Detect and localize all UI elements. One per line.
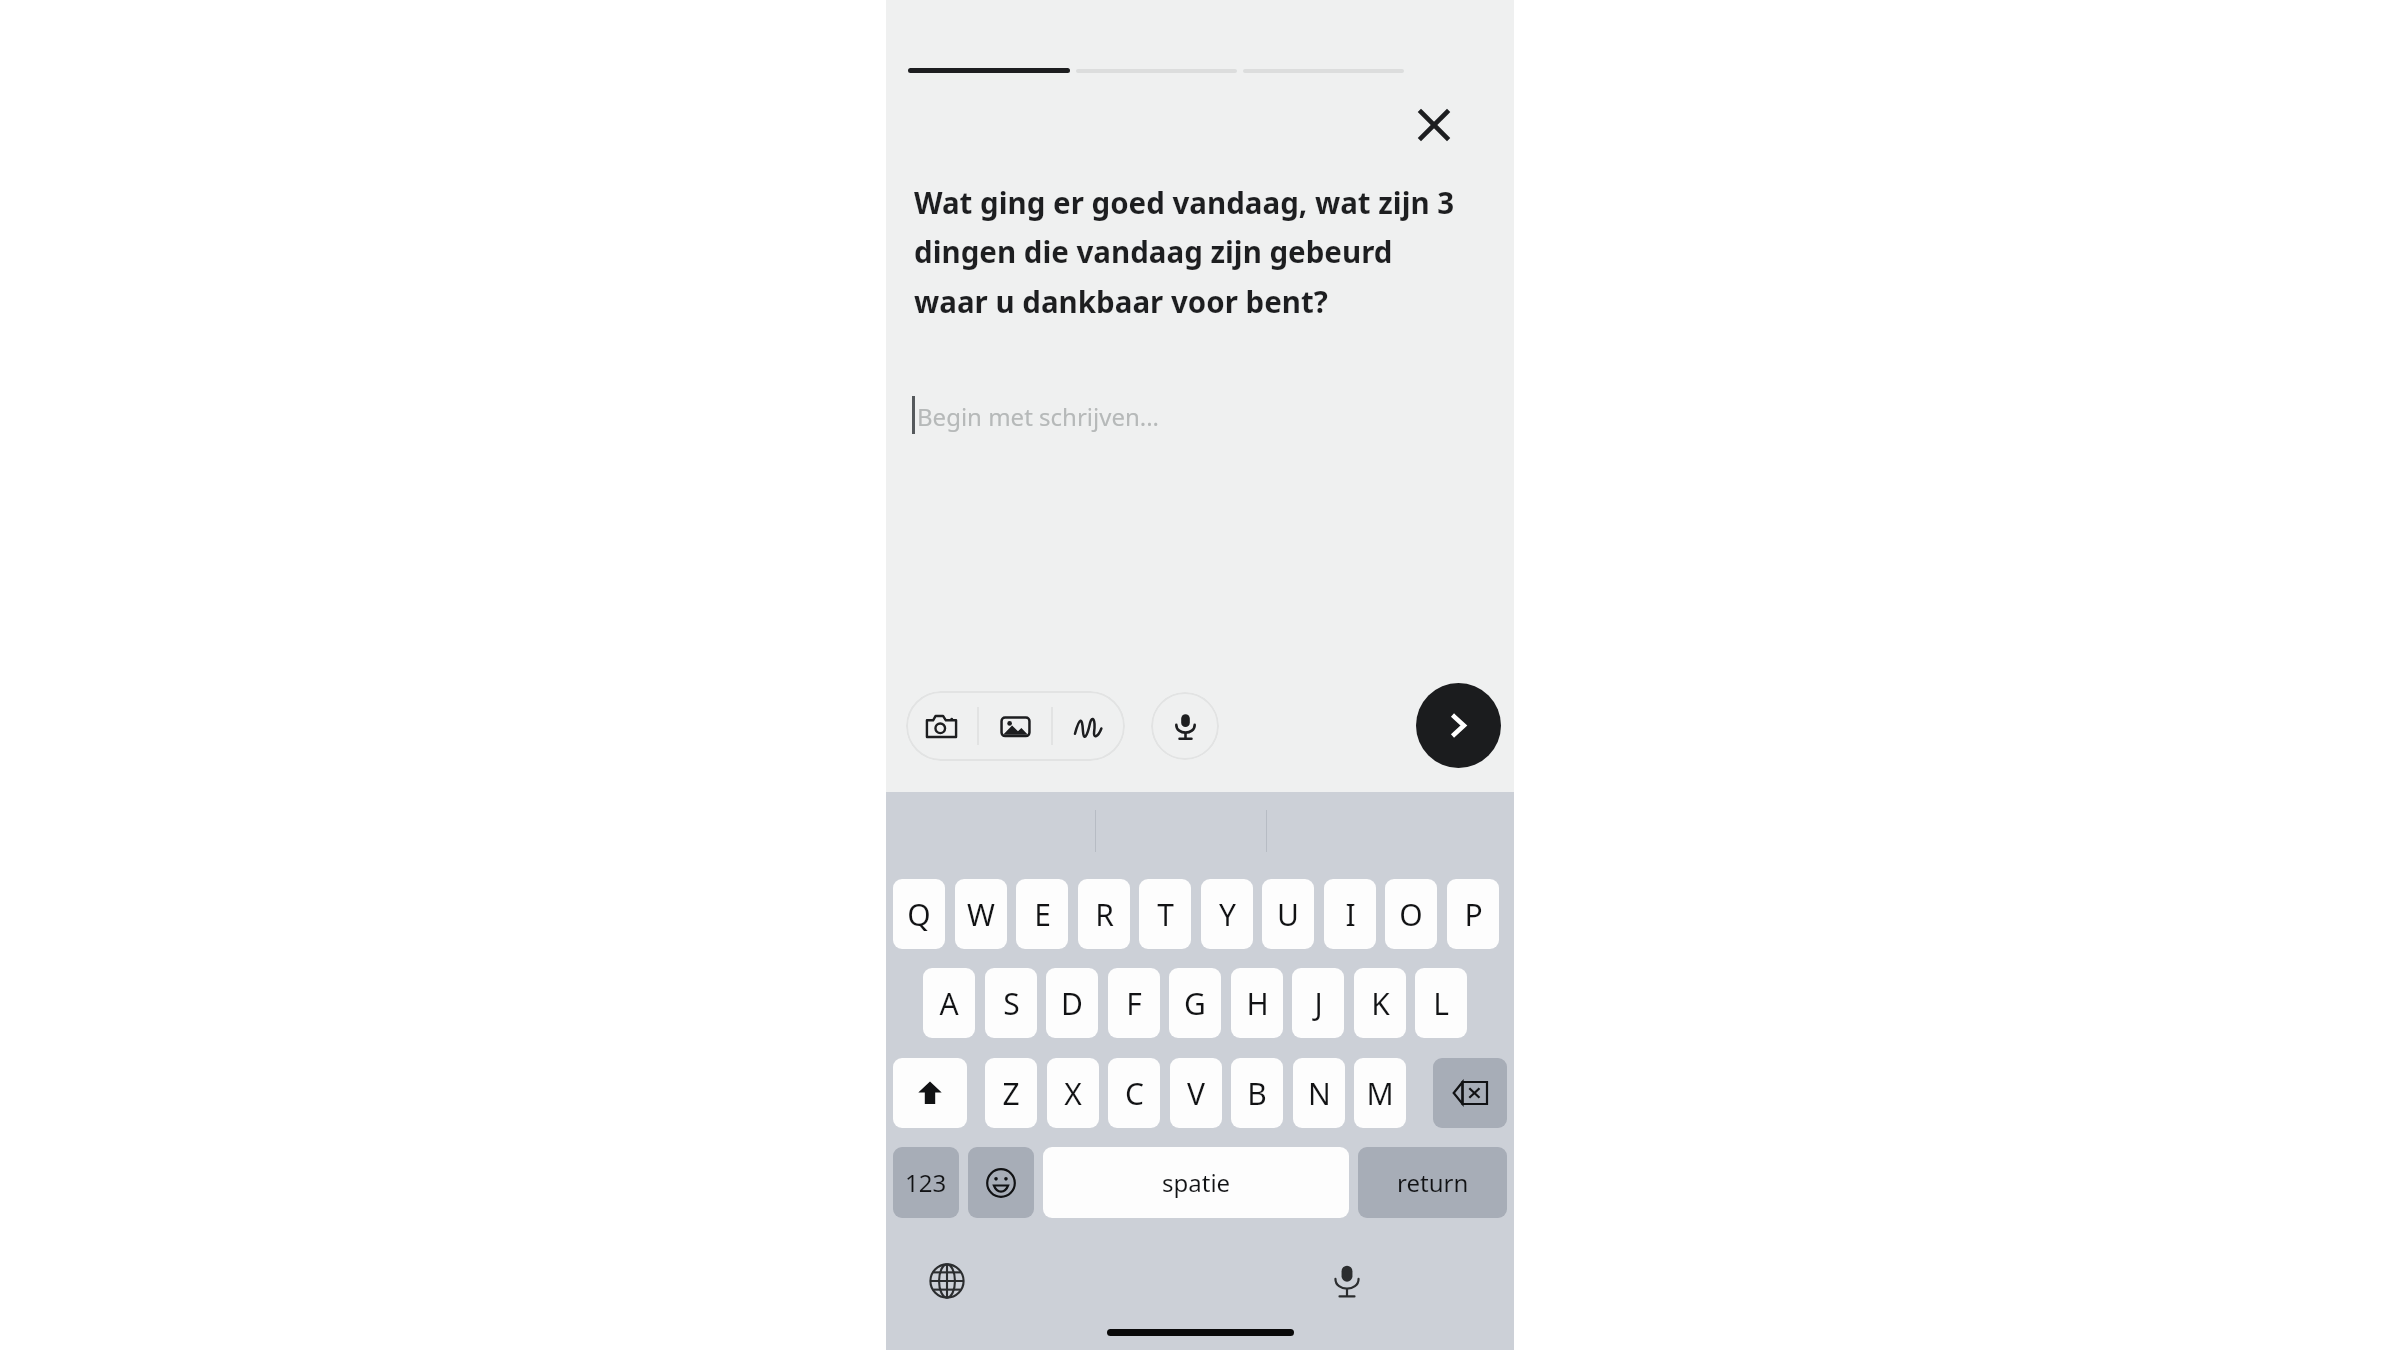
staticText: W <box>967 894 995 935</box>
staticText: J <box>1314 983 1323 1024</box>
staticText: H <box>1246 983 1269 1024</box>
staticText: P <box>1464 894 1483 935</box>
button[interactable]: F <box>1108 968 1160 1038</box>
button[interactable]: P <box>1447 879 1499 949</box>
button[interactable]: U <box>1262 879 1314 949</box>
button[interactable]: E <box>1016 879 1068 949</box>
staticText: return <box>1397 1166 1469 1199</box>
staticText: Z <box>1002 1073 1020 1114</box>
staticText: X <box>1064 1073 1082 1114</box>
button[interactable]: R <box>1078 879 1130 949</box>
staticText: M <box>1366 1073 1394 1114</box>
staticText: K <box>1371 983 1390 1024</box>
staticText: spatie <box>1162 1166 1231 1199</box>
button[interactable]: Dictation <box>1318 1252 1376 1310</box>
button[interactable]: S <box>985 968 1037 1038</box>
button[interactable]: C <box>1108 1058 1160 1128</box>
button[interactable]: Take photo <box>906 691 977 761</box>
staticText: U <box>1277 894 1299 935</box>
staticText: V <box>1187 1073 1205 1114</box>
staticText: B <box>1247 1073 1267 1114</box>
button[interactable]: Close <box>1402 93 1466 157</box>
button[interactable]: M <box>1354 1058 1406 1128</box>
button[interactable]: spatie <box>1043 1147 1349 1218</box>
staticText: Q <box>907 894 931 935</box>
staticText: Begin met schrijven... <box>917 400 1160 433</box>
button[interactable]: D <box>1046 968 1098 1038</box>
button[interactable]: Draw <box>1053 691 1125 761</box>
button[interactable]: 123 <box>893 1147 959 1218</box>
staticText: I <box>1345 894 1356 935</box>
button[interactable]: I <box>1324 879 1376 949</box>
staticText: R <box>1095 894 1114 935</box>
staticText: S <box>1003 983 1020 1024</box>
staticText: O <box>1399 894 1423 935</box>
button[interactable]: Emoji <box>968 1147 1034 1218</box>
button[interactable]: Change keyboard <box>918 1252 976 1310</box>
button[interactable]: Q <box>893 879 945 949</box>
button[interactable]: Z <box>985 1058 1037 1128</box>
button[interactable]: B <box>1231 1058 1283 1128</box>
button[interactable]: Begin met schrijven... <box>912 391 1432 441</box>
button[interactable]: T <box>1139 879 1191 949</box>
staticText: 123 <box>905 1166 947 1199</box>
button[interactable]: Backspace <box>1433 1058 1507 1128</box>
button[interactable]: H <box>1231 968 1283 1038</box>
button[interactable]: Y <box>1201 879 1253 949</box>
button[interactable]: G <box>1169 968 1221 1038</box>
staticText: G <box>1184 983 1206 1024</box>
button[interactable]: V <box>1170 1058 1222 1128</box>
staticText: Y <box>1219 894 1236 935</box>
staticText: T <box>1157 894 1174 935</box>
button[interactable]: X <box>1047 1058 1099 1128</box>
button[interactable]: K <box>1354 968 1406 1038</box>
staticText: A <box>939 983 959 1024</box>
button[interactable]: Add image <box>979 691 1051 761</box>
staticText: E <box>1034 894 1051 935</box>
button[interactable]: Next <box>1416 683 1501 768</box>
button[interactable]: A <box>923 968 975 1038</box>
button[interactable]: Record voice <box>1151 692 1219 760</box>
button[interactable]: return <box>1358 1147 1507 1218</box>
staticText: F <box>1126 983 1142 1024</box>
staticText: D <box>1061 983 1083 1024</box>
button[interactable]: J <box>1292 968 1344 1038</box>
button[interactable]: N <box>1293 1058 1345 1128</box>
staticText: L <box>1433 983 1449 1024</box>
button[interactable]: Shift <box>893 1058 967 1128</box>
button[interactable]: L <box>1415 968 1467 1038</box>
button[interactable]: W <box>955 879 1007 949</box>
button[interactable]: O <box>1385 879 1437 949</box>
staticText: N <box>1308 1073 1331 1114</box>
staticText: C <box>1125 1073 1144 1114</box>
staticText: Wat ging er goed vandaag, wat zijn 3 din… <box>914 182 1470 321</box>
